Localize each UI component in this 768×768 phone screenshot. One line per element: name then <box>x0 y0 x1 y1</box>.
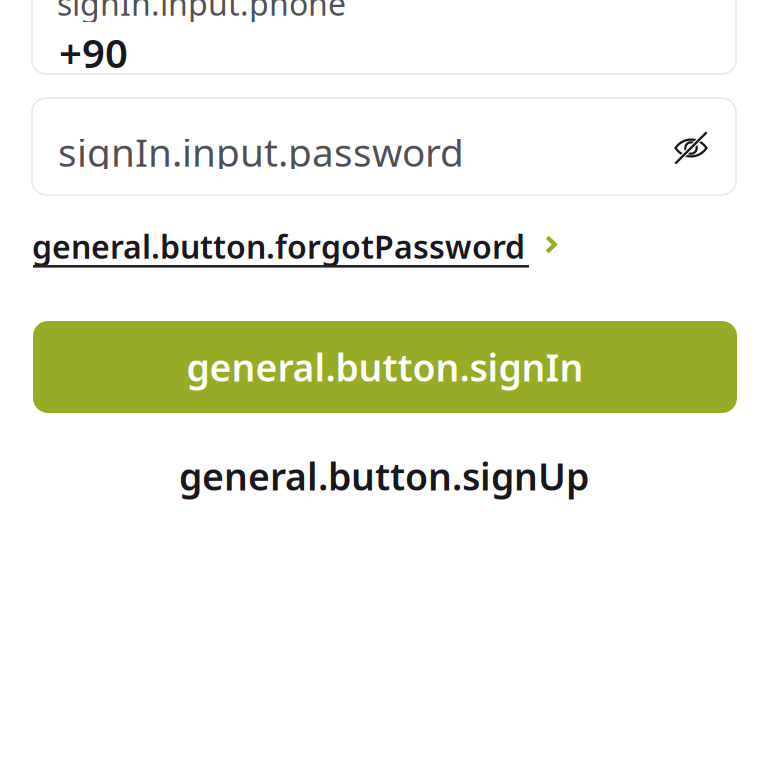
button[interactable]: Show password <box>660 117 722 179</box>
staticText: signIn.input.phone <box>57 0 346 24</box>
staticText: +90 <box>59 26 128 79</box>
button[interactable]: signIn.input.phone <box>32 0 736 74</box>
staticText: general.button.forgotPassword <box>32 225 525 267</box>
staticText: general.button.signIn <box>186 342 583 392</box>
staticText: signIn.input.password <box>58 126 464 177</box>
button[interactable]: general.button.signUp <box>32 448 736 504</box>
button[interactable]: general.button.forgotPassword <box>32 225 577 273</box>
button[interactable]: general.button.signIn <box>33 321 737 413</box>
staticText: general.button.signUp <box>179 451 589 501</box>
